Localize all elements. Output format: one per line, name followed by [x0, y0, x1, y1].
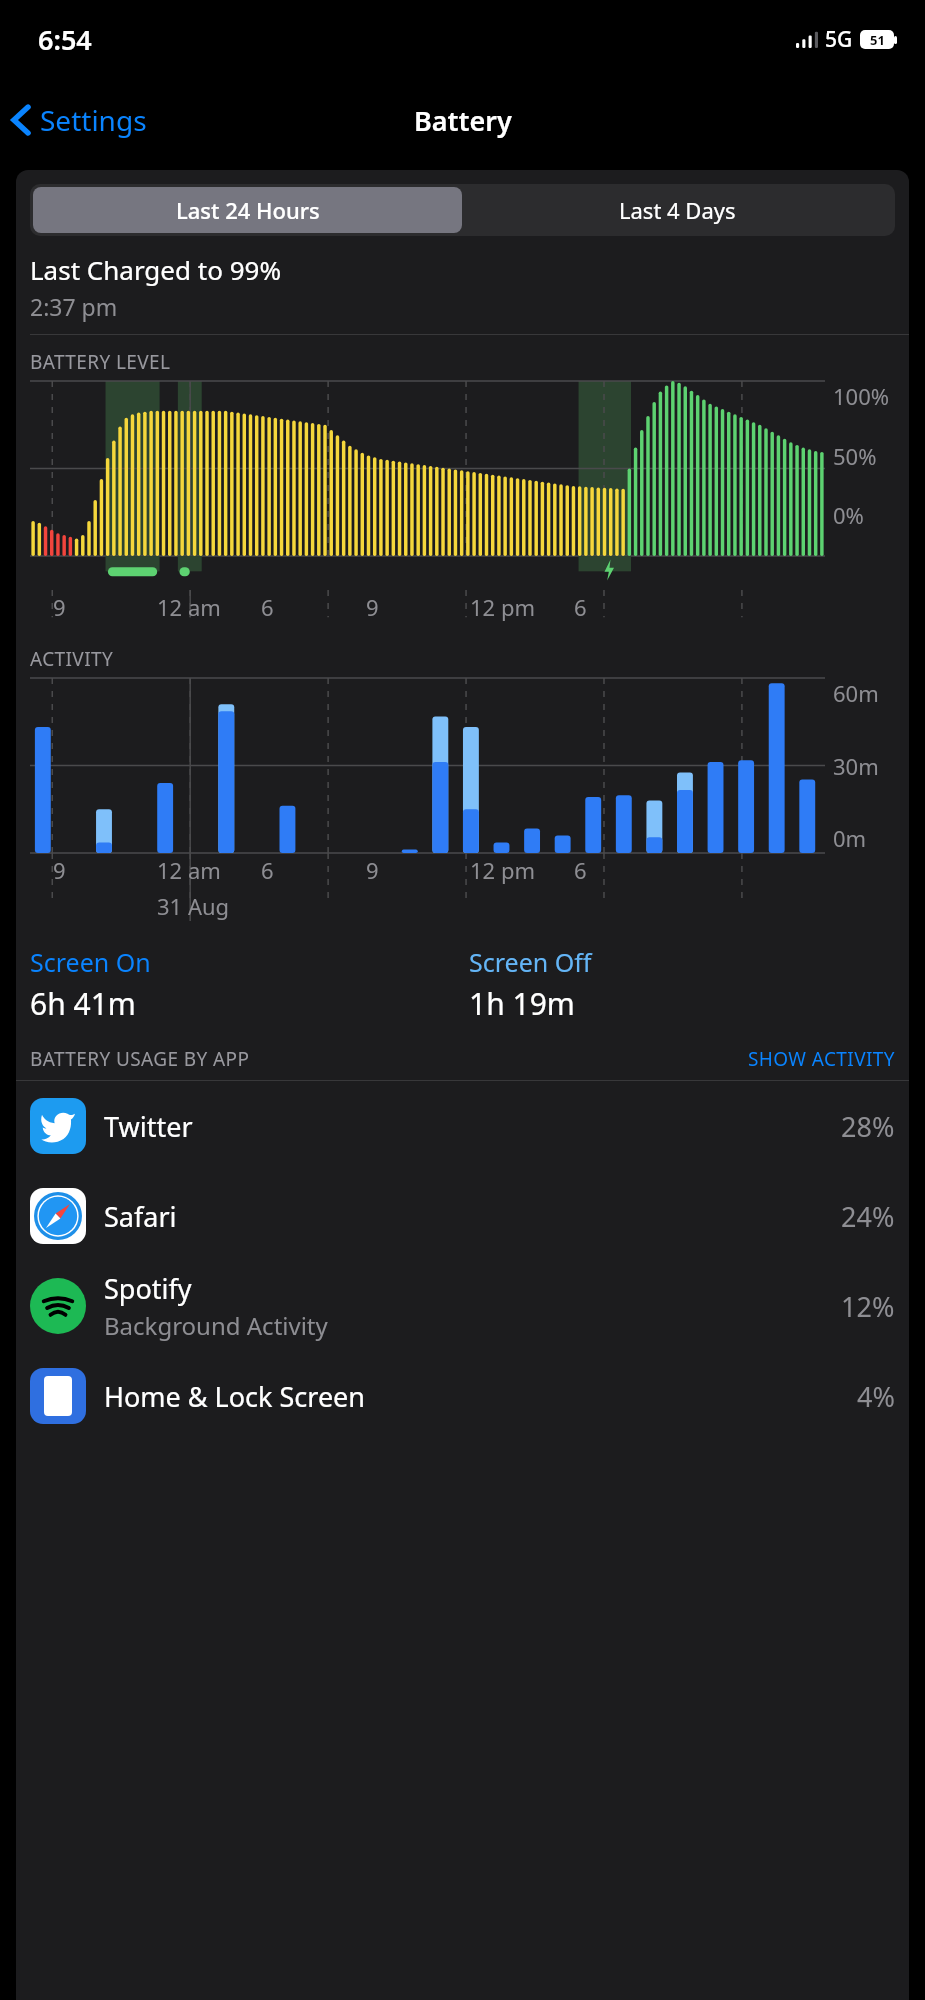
staticText: 1h 19m — [469, 983, 575, 1024]
staticText: 6:54 — [38, 21, 92, 58]
staticText: 12 am — [157, 592, 221, 622]
button[interactable]: Settings — [10, 101, 147, 139]
staticText: 12 am — [157, 855, 221, 885]
staticText: 9 — [366, 592, 379, 622]
staticText: 6 — [261, 855, 274, 885]
button[interactable]: Safari — [16, 1171, 909, 1261]
staticText: 9 — [366, 855, 379, 885]
staticText: 0m — [833, 823, 867, 853]
staticText: 12 pm — [470, 855, 535, 885]
staticText: Last 24 Hours — [176, 195, 320, 225]
button[interactable]: Last 4 Days — [462, 187, 892, 233]
staticText: 31 Aug — [157, 891, 230, 921]
staticText: 50% — [833, 441, 877, 471]
button[interactable]: Spotify — [16, 1261, 909, 1351]
staticText: 12 pm — [470, 592, 535, 622]
staticText: 51 — [870, 31, 885, 49]
staticText: 0% — [833, 500, 864, 530]
staticText: Last Charged to 99% — [30, 252, 282, 287]
staticText: Battery — [414, 102, 512, 139]
staticText: 9 — [53, 855, 66, 885]
staticText: Spotify — [104, 1270, 192, 1307]
staticText: Screen Off — [469, 945, 592, 979]
staticText: 5G — [825, 25, 853, 54]
staticText: BATTERY LEVEL — [30, 349, 171, 375]
staticText: ACTIVITY — [30, 646, 114, 672]
button[interactable]: SHOW ACTIVITY — [748, 1046, 895, 1072]
staticText: 24% — [841, 1198, 895, 1235]
staticText: Background Activity — [104, 1309, 328, 1342]
button[interactable]: Twitter — [16, 1081, 909, 1171]
staticText: Last 4 Days — [619, 195, 736, 225]
staticText: 6 — [574, 855, 587, 885]
staticText: Safari — [104, 1198, 177, 1235]
staticText: 4% — [857, 1378, 895, 1415]
staticText: Twitter — [104, 1108, 193, 1145]
button[interactable]: Last 24 Hours — [33, 187, 462, 233]
staticText: 12% — [841, 1288, 895, 1325]
staticText: 6 — [261, 592, 274, 622]
staticText: 30m — [833, 751, 879, 781]
staticText: 6h 41m — [30, 983, 136, 1024]
staticText: BATTERY USAGE BY APP — [30, 1046, 748, 1072]
staticText: 6 — [574, 592, 587, 622]
staticText: 28% — [841, 1108, 895, 1145]
staticText: 9 — [53, 592, 66, 622]
staticText: Home & Lock Screen — [104, 1378, 366, 1415]
staticText: 100% — [833, 381, 890, 411]
staticText: 2:37 pm — [30, 291, 118, 322]
button[interactable]: Home & Lock Screen — [16, 1351, 909, 1441]
staticText: Settings — [40, 101, 147, 139]
staticText: Screen On — [30, 945, 151, 979]
staticText: 60m — [833, 678, 879, 708]
